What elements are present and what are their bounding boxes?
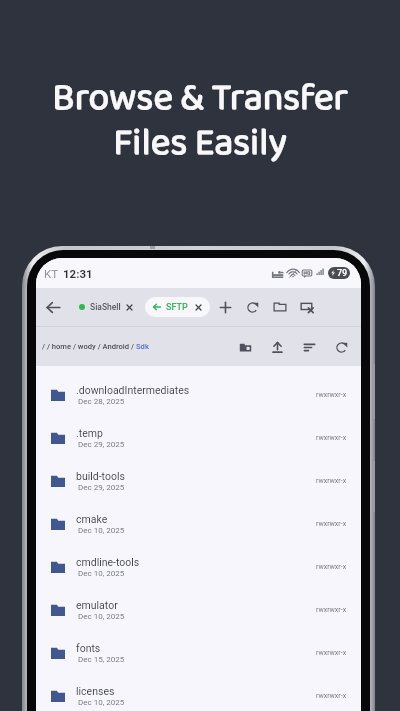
staticText: Dec 29, 2025	[78, 483, 125, 492]
staticText: .temp	[76, 427, 103, 439]
staticText: Dec 10, 2025	[78, 612, 125, 621]
button[interactable]: build-tools	[36, 459, 361, 502]
staticText: rwxrwxr-x	[316, 692, 347, 700]
staticText: licenses	[76, 685, 115, 697]
button[interactable]: cmake	[36, 502, 361, 545]
button[interactable]: cmdline-tools	[36, 545, 361, 588]
staticText: rwxrwxr-x	[316, 520, 347, 528]
staticText: Dec 10, 2025	[78, 698, 125, 707]
staticText: rwxrwxr-x	[316, 477, 347, 485]
button[interactable]: SiaShell	[74, 297, 138, 317]
button[interactable]: Sort	[293, 332, 325, 362]
staticText: Browse & Transfer Files Easily	[0, 69, 400, 174]
staticText: 79	[337, 268, 348, 279]
staticText: cmake	[76, 513, 108, 525]
staticText: KT	[44, 267, 59, 280]
button[interactable]: SFTP	[145, 297, 210, 317]
button[interactable]: Upload	[261, 332, 293, 362]
staticText: Dec 10, 2025	[78, 526, 125, 535]
button[interactable]: .temp	[36, 416, 361, 459]
button[interactable]: New folder	[229, 332, 261, 362]
staticText: build-tools	[76, 470, 125, 482]
staticText: cmdline-tools	[76, 556, 140, 568]
staticText: Dec 29, 2025	[78, 440, 125, 449]
button[interactable]: Add tab	[212, 292, 239, 322]
button[interactable]: .downloadIntermediates	[36, 373, 361, 416]
staticText: SFTP	[166, 302, 188, 313]
button[interactable]: licenses	[36, 674, 361, 711]
staticText: rwxrwxr-x	[316, 649, 347, 657]
staticText: fonts	[76, 642, 101, 654]
staticText: 12:31	[63, 267, 93, 280]
staticText: emulator	[76, 599, 118, 611]
staticText: SiaShell	[90, 302, 121, 312]
staticText: Dec 10, 2025	[78, 569, 125, 578]
staticText: / / home / wody / Android /	[42, 342, 136, 351]
staticText: rwxrwxr-x	[316, 434, 347, 442]
staticText: rwxrwxr-x	[316, 391, 347, 399]
button[interactable]: Close window	[293, 292, 320, 322]
button[interactable]: fonts	[36, 631, 361, 674]
staticText: rwxrwxr-x	[316, 563, 347, 571]
staticText: Dec 28, 2025	[78, 397, 125, 406]
button[interactable]: Reload	[325, 332, 357, 362]
button[interactable]: Back	[40, 294, 66, 320]
button[interactable]: emulator	[36, 588, 361, 631]
staticText: rwxrwxr-x	[316, 606, 347, 614]
button[interactable]: Refresh	[239, 292, 266, 322]
staticText: Dec 15, 2025	[78, 655, 125, 664]
staticText: Sdk	[136, 342, 149, 351]
staticText: .downloadIntermediates	[76, 384, 190, 396]
button[interactable]: Open folder	[266, 292, 293, 322]
